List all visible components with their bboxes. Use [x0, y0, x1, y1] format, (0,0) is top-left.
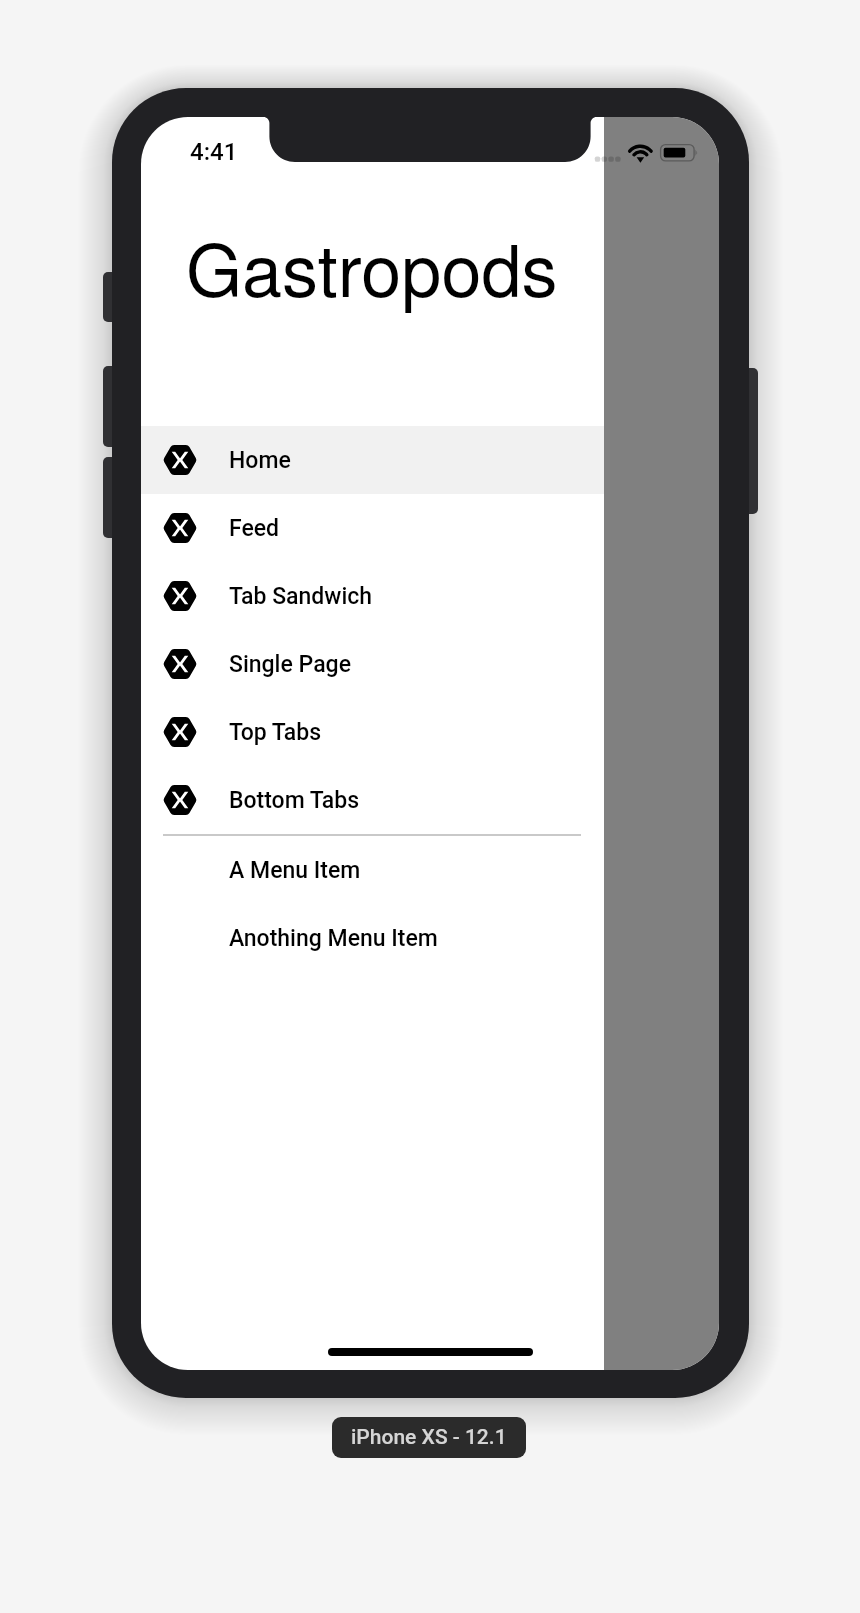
button[interactable]: Bottom Tabs: [141, 766, 719, 834]
staticText: Bottom Tabs: [229, 787, 360, 814]
staticText: Feed: [229, 515, 280, 542]
button[interactable]: Home: [141, 426, 719, 494]
staticText: A Menu Item: [229, 857, 361, 884]
staticText: Tab Sandwich: [229, 583, 373, 610]
staticText: Home: [229, 447, 291, 474]
staticText: Top Tabs: [229, 719, 322, 746]
button[interactable]: Feed: [141, 494, 719, 562]
button[interactable]: Top Tabs: [141, 698, 719, 766]
button[interactable]: Tab Sandwich: [141, 562, 719, 630]
staticText: Gastropods: [186, 214, 558, 317]
staticText: 4:41: [190, 138, 238, 166]
button[interactable]: A Menu Item: [141, 836, 719, 904]
staticText: iPhone XS - 12.1: [351, 1425, 507, 1450]
button[interactable]: Anothing Menu Item: [141, 904, 719, 972]
button[interactable]: Single Page: [141, 630, 719, 698]
staticText: Single Page: [229, 651, 351, 678]
staticText: Anothing Menu Item: [229, 925, 438, 952]
